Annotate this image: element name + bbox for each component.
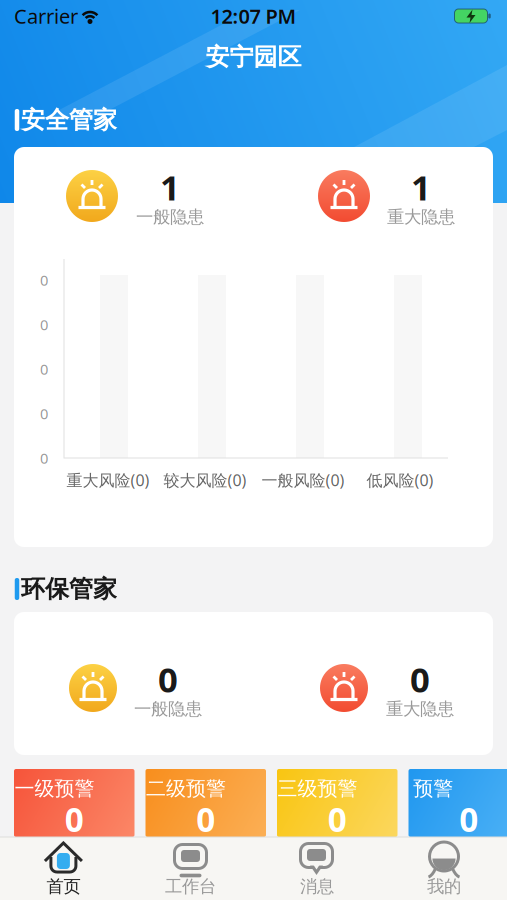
staticText: 一级预警 xyxy=(15,776,95,801)
staticText: 0 xyxy=(65,797,84,841)
staticText: 安宁园区 xyxy=(205,42,301,72)
staticText: 0 xyxy=(158,656,178,702)
staticText: 0 xyxy=(459,797,478,841)
staticText: 1 xyxy=(411,164,431,210)
staticText: 重大风险(0) xyxy=(66,469,149,491)
staticText: 1 xyxy=(160,164,180,210)
staticText: 0 xyxy=(196,797,215,841)
staticText: 0 xyxy=(410,656,430,702)
staticText: 12:07 PM xyxy=(210,3,296,29)
button[interactable]: 二级预警 xyxy=(145,769,266,837)
button[interactable]: 工作台 xyxy=(127,837,254,900)
staticText: 二级预警 xyxy=(146,776,226,801)
staticText: 一般风险(0) xyxy=(261,469,344,491)
staticText: 较大风险(0) xyxy=(163,469,246,491)
staticText: 一般隐患 xyxy=(136,206,204,228)
staticText: 0 xyxy=(40,315,48,334)
button[interactable]: 消息 xyxy=(253,837,380,900)
staticText: 环保管家 xyxy=(21,574,117,604)
staticText: 工作台 xyxy=(165,876,216,897)
staticText: 我的 xyxy=(427,876,461,897)
staticText: 重大隐患 xyxy=(387,206,455,228)
staticText: 低风险(0) xyxy=(366,469,433,491)
button[interactable]: 首页 xyxy=(0,837,127,900)
button[interactable]: 三级预警 xyxy=(277,769,397,837)
staticText: 一般隐患 xyxy=(134,698,202,720)
staticText: 首页 xyxy=(46,876,80,897)
staticText: 安全管家 xyxy=(21,105,117,135)
staticText: Carrier xyxy=(14,3,78,29)
staticText: 0 xyxy=(40,448,48,468)
button[interactable]: 我的 xyxy=(380,837,507,900)
staticText: 0 xyxy=(40,359,48,379)
staticText: 消息 xyxy=(300,876,334,897)
staticText: 0 xyxy=(328,797,347,841)
button[interactable]: 一级预警 xyxy=(14,769,134,837)
staticText: 0 xyxy=(40,270,48,290)
staticText: 重大隐患 xyxy=(386,698,454,720)
staticText: 三级预警 xyxy=(278,776,358,801)
button[interactable]: 预警 xyxy=(408,769,507,837)
staticText: 预警 xyxy=(413,776,453,801)
staticText: 0 xyxy=(40,404,48,423)
